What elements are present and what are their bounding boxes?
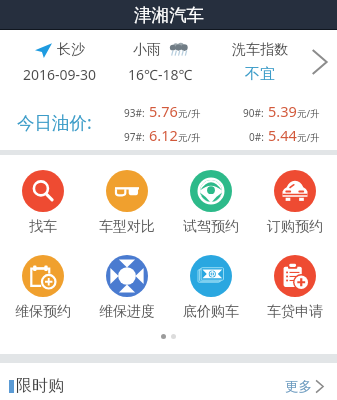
staticText: 车贷申请 [267, 303, 323, 321]
staticText: 93#: [124, 106, 145, 120]
staticText: 今日油价: [17, 110, 92, 134]
button[interactable]: 找车 [0, 155, 85, 240]
staticText: 车型对比 [99, 218, 155, 236]
staticText: 2016-09-30 [23, 65, 97, 84]
staticText: 元/升 [178, 131, 201, 144]
staticText: 0#: [249, 130, 264, 144]
button[interactable]: 底价购车 [169, 240, 253, 325]
staticText: 限时购 [16, 376, 64, 396]
staticText: 维保预约 [15, 303, 71, 321]
staticText: 6.12 [149, 125, 178, 145]
staticText: 元/升 [297, 131, 320, 144]
staticText: 更多 [285, 378, 312, 395]
button[interactable]: 试驾预约 [169, 155, 253, 240]
staticText: 洗车指数 [232, 41, 288, 59]
staticText: 小雨 [133, 41, 161, 59]
staticText: 不宜 [245, 65, 275, 84]
staticText: 5.39 [268, 101, 297, 121]
staticText: 90#: [243, 106, 264, 120]
staticText: 97#: [124, 130, 145, 144]
staticText: 5.76 [149, 101, 178, 121]
button[interactable]: 车贷申请 [253, 240, 337, 325]
staticText: 5.44 [268, 125, 297, 145]
button[interactable]: 订购预约 [253, 155, 337, 240]
staticText: 底价购车 [183, 303, 239, 321]
staticText: 津湘汽车 [134, 4, 204, 26]
staticText: 元/升 [297, 107, 320, 120]
button[interactable]: 维保预约 [0, 240, 85, 325]
button[interactable]: 车型对比 [85, 155, 169, 240]
staticText: 试驾预约 [183, 218, 239, 236]
staticText: 订购预约 [267, 218, 323, 236]
button[interactable]: More weather [310, 34, 329, 90]
staticText: 16℃-18℃ [128, 65, 193, 84]
button[interactable]: 维保进度 [85, 240, 169, 325]
button[interactable]: 更多 [285, 378, 324, 395]
staticText: 找车 [29, 218, 57, 236]
staticText: 维保进度 [99, 303, 155, 321]
staticText: 元/升 [178, 107, 201, 120]
staticText: 长沙 [57, 41, 85, 59]
